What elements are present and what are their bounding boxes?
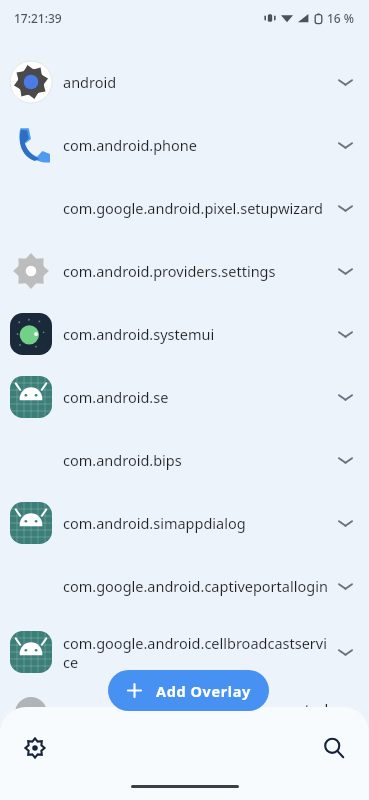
staticText: 17:21:39 [14, 10, 62, 26]
button[interactable]: com.android.phone [0, 113, 369, 176]
button[interactable]: com.google.android.pixel.setupwizard [0, 176, 369, 239]
button[interactable]: Settings [12, 725, 58, 771]
button[interactable]: com.android.simappdialog [0, 491, 369, 554]
staticText: com.android.systemui [63, 324, 329, 344]
button[interactable]: Search [311, 725, 357, 771]
staticText: com.android.se [63, 387, 329, 407]
staticText: com.google.android.cellbroadcastservice [63, 633, 329, 672]
button[interactable]: android [0, 50, 369, 113]
staticText: com.android.providers.settings [63, 261, 329, 281]
staticText: com.google.android.captiveportallogin [63, 576, 329, 596]
button[interactable]: com.google.android.captiveportallogin [0, 554, 369, 617]
staticText: com.google.android.permissioncontrol [63, 699, 329, 719]
staticText: Add Overlay [156, 681, 251, 701]
staticText: com.android.phone [63, 135, 329, 155]
button[interactable]: com.google.android.permissioncontrol [0, 687, 369, 731]
button[interactable]: com.android.se [0, 365, 369, 428]
button[interactable]: com.google.android.cellbroadcastservice [0, 617, 369, 687]
staticText: 16 % [327, 10, 355, 26]
button[interactable]: com.android.providers.settings [0, 239, 369, 302]
staticText: com.android.bips [63, 450, 329, 470]
button[interactable]: Add Overlay [108, 670, 269, 711]
staticText: com.android.simappdialog [63, 513, 329, 533]
button[interactable]: com.android.bips [0, 428, 369, 491]
staticText: android [63, 72, 329, 92]
button[interactable]: com.android.systemui [0, 302, 369, 365]
staticText: com.google.android.pixel.setupwizard [63, 198, 329, 218]
